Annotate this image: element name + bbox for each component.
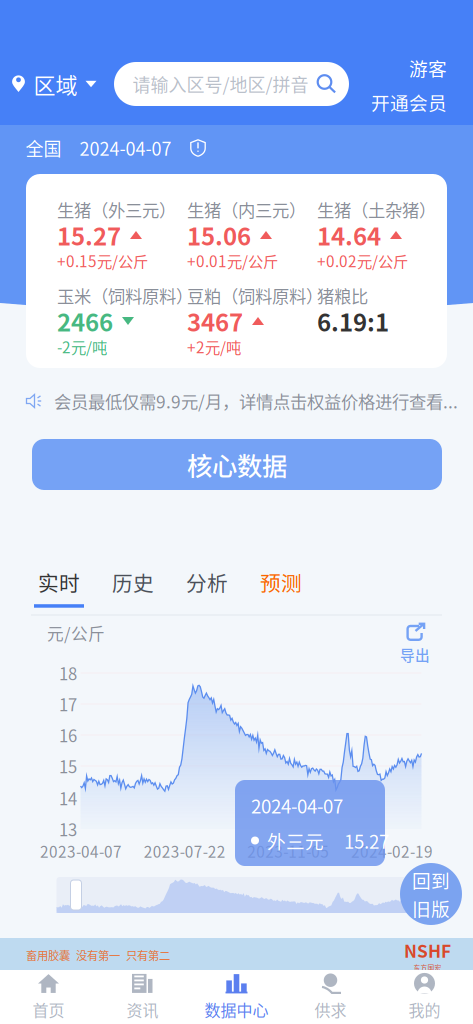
button[interactable]: 核心数据 [32,439,442,490]
staticText: 分析 [186,567,228,597]
button[interactable]: 预测 [244,568,318,606]
staticText: 3467 [187,304,243,338]
button[interactable]: 区域 [0,61,110,107]
staticText: 生猪（外三元） [57,197,176,222]
staticText: 外三元 [267,827,324,854]
staticText: 数据中心 [204,998,268,1021]
staticText: 13 [59,817,77,841]
staticText: 核心数据 [187,446,287,483]
staticText: 豆粕（饲料原料） [187,283,323,308]
staticText: 2023-04-07 [40,840,122,862]
staticText: 全国 [25,135,61,161]
button[interactable]: 分析 [170,568,244,606]
staticText: 首页 [32,998,64,1021]
staticText: 旧版 [412,894,450,921]
staticText: -2元/吨 [57,335,107,358]
staticText: 回到 [412,866,450,893]
button[interactable]: 请输入区号/地区/拼音 [114,62,349,106]
button[interactable]: 广告 [0,938,473,972]
staticText: 东方国宏 [413,963,441,972]
staticText: 玉米（饲料原料） [57,283,193,308]
button[interactable]: 土杂猪 [357,1012,473,1024]
staticText: 15.27 [344,827,389,854]
staticText: 开通会员 [371,88,447,115]
button[interactable]: 内三元 [189,1012,338,1024]
staticText: 游客 [409,54,447,81]
staticText: +0.02元/公斤 [317,249,408,272]
staticText: 16 [59,723,77,747]
staticText: 生猪（土杂猪） [317,197,436,222]
staticText: +0.15元/公斤 [57,249,148,272]
button[interactable]: 外三元 [33,1012,177,1024]
button[interactable]: 我的 [377,970,471,1024]
staticText: 畜用胶囊 没有第一 只有第二 [26,947,170,963]
staticText: 2024-04-07 [79,135,171,161]
staticText: 15 [59,754,77,778]
staticText: 18 [59,661,77,685]
button[interactable]: 会员最低仅需9.9元/月，详情点击权益价格进行查看... [0,386,473,416]
staticText: 2024-04-07 [251,792,343,819]
staticText: +2元/吨 [187,335,241,358]
staticText: 预测 [260,567,302,597]
staticText: 猪粮比 [317,283,368,308]
button[interactable]: 回到 [400,863,462,925]
staticText: 2466 [57,304,113,338]
staticText: 会员最低仅需9.9元/月，详情点击权益价格进行查看... [54,388,458,414]
staticText: 请输入区号/地区/拼音 [132,71,308,97]
staticText: NSHF [404,938,451,963]
staticText: 历史 [112,567,154,597]
staticText: 6.19:1 [317,304,389,338]
staticText: 14.64 [317,218,381,252]
staticText: 实时 [38,567,80,597]
staticText: 2024-02-19 [351,840,433,862]
staticText: 17 [59,692,77,716]
staticText: 导出 [400,644,430,665]
staticText: 我的 [408,998,440,1021]
button[interactable]: 供求 [283,970,377,1024]
staticText: 14 [59,786,77,810]
staticText: 供求 [314,998,346,1021]
staticText: 2023-07-22 [144,840,226,862]
button[interactable]: 历史 [96,568,170,606]
staticText: 区域 [33,68,77,100]
button[interactable]: 游客 [375,54,447,116]
staticText: 元/公斤 [47,621,105,645]
staticText: 资讯 [126,998,158,1021]
button[interactable]: 首页 [1,970,95,1024]
staticText: 2023-11-05 [247,840,329,862]
button[interactable]: 导出 [400,623,430,665]
staticText: 生猪（内三元） [187,197,306,222]
staticText: 15.06 [187,218,251,252]
button[interactable]: 资讯 [95,970,189,1024]
button[interactable]: 数据中心 [189,970,283,1024]
button[interactable]: 实时 [22,568,96,606]
staticText: 15.27 [57,218,121,252]
staticText: +0.01元/公斤 [187,249,278,272]
